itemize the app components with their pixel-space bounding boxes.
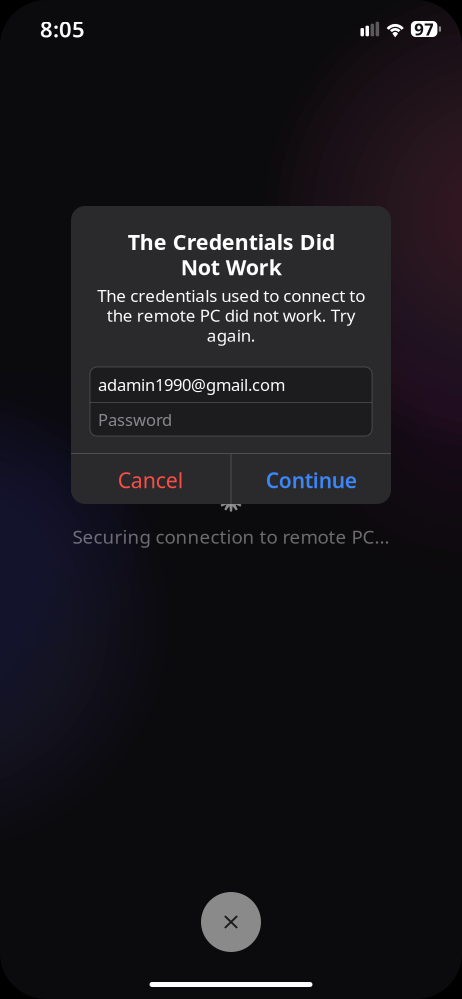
staticText: The credentials used to connect to the r…: [97, 285, 365, 345]
staticText: 97: [414, 18, 434, 40]
staticText: adamin1990@gmail.com: [98, 374, 285, 396]
staticText: The Credentials Did Not Work: [127, 229, 334, 280]
staticText: 8:05: [40, 14, 85, 44]
staticText: Cancel: [118, 466, 184, 494]
button[interactable]: Close: [201, 892, 261, 952]
button[interactable]: Cancel: [71, 454, 230, 506]
staticText: Continue: [266, 466, 357, 494]
button[interactable]: Continue: [231, 454, 391, 506]
staticText: Securing connection to remote PC...: [72, 524, 389, 549]
staticText: Password: [98, 409, 172, 431]
